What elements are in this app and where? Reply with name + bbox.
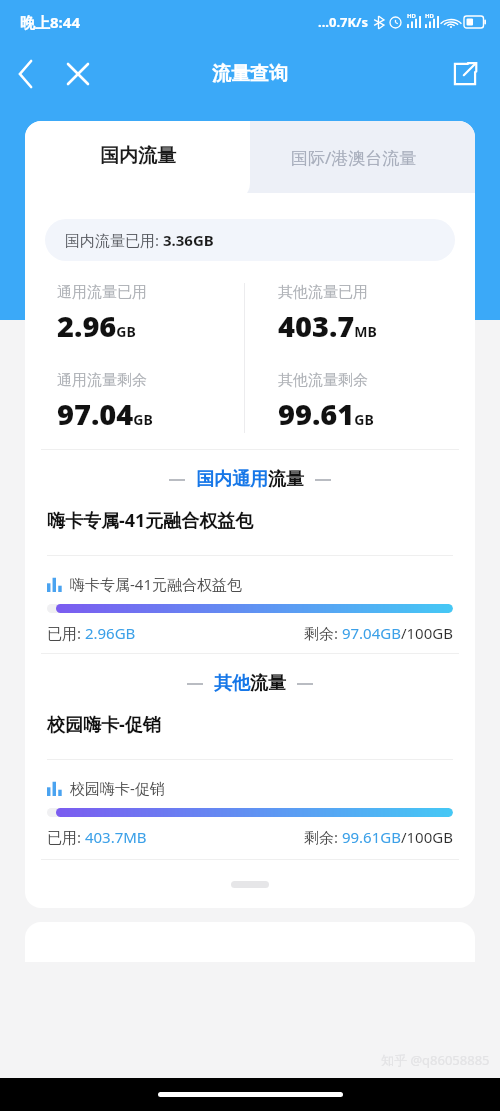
staticText: 已用: 2.96GB (47, 623, 136, 643)
button[interactable]: Share (442, 51, 488, 97)
staticText: 校园嗨卡-促销 (70, 778, 165, 798)
staticText: 嗨卡专属-41元融合权益包 (47, 508, 254, 533)
staticText: 已用: 403.7MB (47, 827, 147, 847)
staticText: 通用流量剩余 (57, 371, 147, 390)
staticText: 校园嗨卡-促销 (47, 712, 161, 737)
button[interactable]: 国内流量已用: 3.36GB (45, 219, 455, 261)
staticText: 通用流量已用 (57, 283, 147, 302)
button[interactable]: 校园嗨卡-促销 (47, 712, 453, 847)
staticText: 403.7MB (278, 306, 377, 345)
staticText: 国际/港澳台流量 (291, 146, 417, 169)
staticText: 其他流量剩余 (278, 371, 368, 390)
staticText: 晚上8:44 (20, 12, 80, 32)
staticText: 剩余: 97.04GB/100GB (304, 623, 453, 643)
staticText: 知乎 @q86058885 (381, 1051, 490, 1069)
staticText: 99.61GB (278, 394, 374, 433)
staticText: ...0.7K/s (318, 13, 369, 31)
staticText: 国内流量 (100, 144, 176, 168)
button[interactable]: 国际/港澳台流量 (232, 121, 475, 193)
staticText: 97.04GB (57, 394, 153, 433)
staticText: HD (407, 12, 416, 20)
staticText: 国内通用流量 (196, 468, 304, 491)
staticText: 剩余: 99.61GB/100GB (304, 827, 453, 847)
staticText: 国内流量已用: 3.36GB (65, 230, 214, 250)
button[interactable]: 国内流量 (25, 121, 250, 201)
staticText: HD (425, 12, 434, 20)
button[interactable]: Back (0, 48, 52, 100)
staticText: 嗨卡专属-41元融合权益包 (70, 574, 242, 594)
staticText: 其他流量已用 (278, 283, 368, 302)
staticText: 流量查询 (212, 62, 288, 86)
button[interactable]: Close (52, 48, 104, 100)
staticText: 其他流量 (214, 672, 286, 695)
staticText: 2.96GB (57, 306, 136, 345)
button[interactable]: 嗨卡专属-41元融合权益包 (47, 508, 453, 643)
